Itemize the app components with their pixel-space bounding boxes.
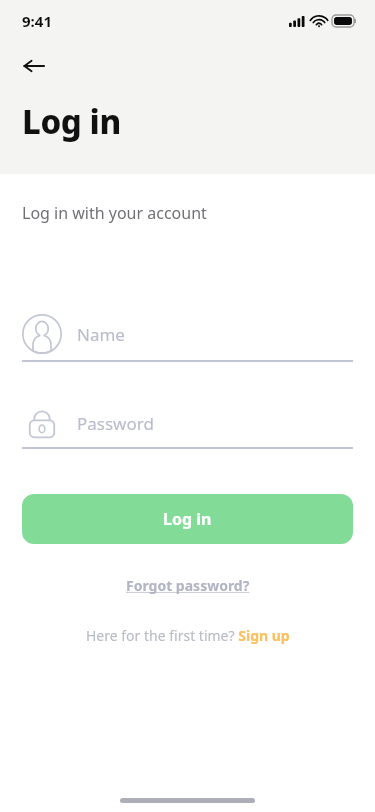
button[interactable]: Name	[22, 312, 353, 362]
staticText: Password	[77, 412, 154, 435]
staticText: Log in with your account	[22, 202, 207, 224]
staticText: 9:41	[22, 11, 52, 31]
staticText: Name	[77, 323, 125, 346]
button[interactable]: Forgot password?	[122, 574, 254, 597]
button[interactable]: Password	[22, 399, 353, 449]
staticText: Log in	[163, 508, 212, 530]
button[interactable]: Back	[14, 46, 54, 86]
staticText: Log in	[22, 99, 121, 144]
staticText: Forgot password?	[126, 576, 250, 595]
button[interactable]: Log in	[22, 494, 353, 544]
button[interactable]: Here for the first time? Sign up	[82, 624, 294, 647]
staticText: Here for the first time? Sign up	[86, 626, 290, 645]
